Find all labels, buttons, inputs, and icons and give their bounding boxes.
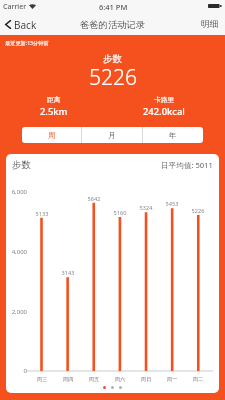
staticText: 周二 — [187, 376, 209, 383]
staticText: 0 — [6, 367, 27, 375]
staticText: 5324 — [135, 204, 157, 212]
button[interactable]: 周 — [22, 127, 81, 143]
staticText: 周五 — [83, 376, 105, 383]
staticText: 2,000 — [6, 308, 27, 316]
staticText: 步数 — [103, 53, 122, 65]
staticText: 周日 — [135, 376, 157, 383]
staticText: 5453 — [161, 200, 183, 208]
button[interactable]: 月 — [82, 127, 142, 143]
staticText: 6:41 PM — [99, 2, 128, 12]
button[interactable]: 年 — [143, 127, 203, 143]
staticText: 步数 — [12, 159, 31, 171]
staticText: 2.5km — [40, 105, 68, 118]
button[interactable]: Back — [0, 14, 41, 35]
staticText: 5160 — [109, 209, 131, 217]
staticText: 月 — [108, 131, 116, 140]
staticText: 周 — [48, 131, 56, 140]
staticText: 3143 — [57, 269, 79, 277]
staticText: 日平均值: 5011 — [161, 160, 213, 170]
staticText: 爸爸的活动记录 — [80, 19, 146, 31]
staticText: 卡路里 — [154, 95, 175, 104]
staticText: 周六 — [109, 376, 131, 383]
staticText: 年 — [169, 131, 177, 140]
staticText: 最近更新:13分钟前 — [5, 39, 49, 46]
staticText: 5642 — [83, 195, 105, 203]
staticText: 距离 — [47, 95, 61, 104]
staticText: Carrier — [3, 2, 27, 12]
staticText: Back — [14, 18, 37, 32]
button[interactable]: 明细 — [195, 14, 225, 35]
staticText: 5133 — [31, 210, 53, 218]
staticText: 5226 — [187, 207, 209, 215]
staticText: 周三 — [31, 376, 53, 383]
staticText: 6,000 — [6, 188, 27, 196]
staticText: 5226 — [89, 63, 137, 92]
staticText: 明细 — [201, 19, 219, 30]
staticText: 周一 — [161, 376, 183, 383]
staticText: 4,000 — [6, 248, 27, 256]
staticText: 242.0kcal — [143, 105, 185, 118]
staticText: 周四 — [57, 376, 79, 383]
